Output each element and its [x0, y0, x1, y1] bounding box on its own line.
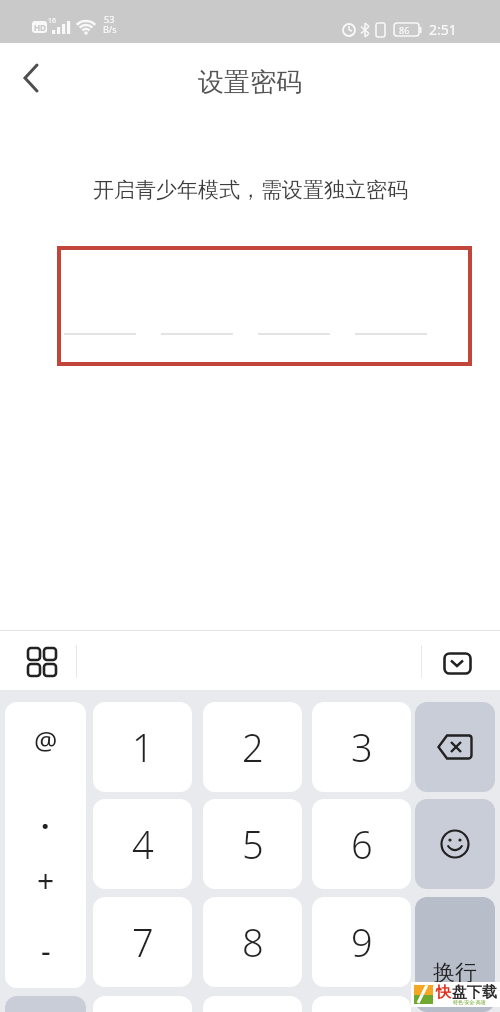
staticText: 盘下载 — [452, 983, 497, 1002]
staticText: 9 — [351, 916, 373, 968]
staticText: 4 — [132, 818, 154, 870]
staticText: 5 — [242, 818, 264, 870]
button[interactable]: 8 — [203, 897, 302, 987]
button[interactable]: 7 — [93, 897, 192, 987]
button[interactable] — [312, 996, 411, 1012]
button[interactable] — [93, 996, 192, 1012]
button[interactable] — [57, 246, 472, 366]
staticText: @ — [34, 722, 58, 757]
staticText: . — [41, 797, 50, 838]
staticText: 换行 — [433, 959, 477, 987]
button[interactable] — [415, 799, 495, 889]
button[interactable]: 换行 — [415, 897, 495, 1012]
staticText: 开启青少年模式，需设置独立密码 — [93, 177, 408, 203]
staticText: 特色·安全·高速 — [453, 999, 486, 1006]
button[interactable] — [5, 996, 86, 1012]
button[interactable]: 2 — [203, 702, 302, 792]
button[interactable] — [203, 996, 302, 1012]
staticText: 16 — [48, 16, 57, 26]
staticText: 2:51 — [429, 20, 457, 39]
staticText: 86 — [399, 24, 410, 36]
staticText: 7 — [132, 916, 154, 968]
staticText: 53 — [104, 13, 115, 25]
staticText: 快 — [436, 983, 451, 1002]
button[interactable]: 6 — [312, 799, 411, 889]
staticText: - — [41, 930, 51, 971]
staticText: + — [37, 860, 55, 901]
staticText: 3 — [351, 721, 373, 773]
staticText: HD — [34, 22, 46, 33]
button[interactable]: 5 — [203, 799, 302, 889]
staticText: B/s — [103, 23, 117, 35]
staticText: 1 — [132, 721, 154, 773]
button[interactable]: 1 — [93, 702, 192, 792]
staticText: 8 — [242, 916, 264, 968]
staticText: 2 — [242, 721, 264, 773]
button[interactable] — [18, 63, 48, 93]
staticText: 6 — [351, 818, 373, 870]
button[interactable] — [415, 702, 495, 792]
button[interactable] — [443, 652, 472, 675]
button[interactable]: 3 — [312, 702, 411, 792]
button[interactable] — [26, 646, 58, 678]
button[interactable]: 4 — [93, 799, 192, 889]
button[interactable]: @ — [5, 702, 86, 988]
staticText: 设置密码 — [198, 66, 302, 99]
button[interactable]: 9 — [312, 897, 411, 987]
